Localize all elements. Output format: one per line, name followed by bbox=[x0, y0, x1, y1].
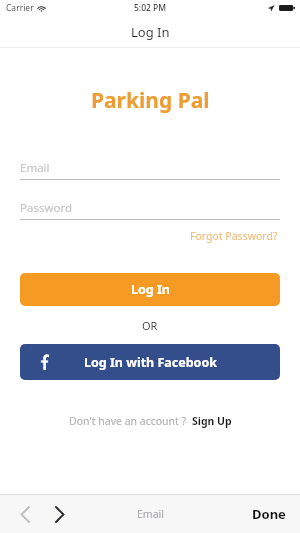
staticText: Email bbox=[20, 160, 50, 176]
button[interactable]: Previous field bbox=[10, 499, 40, 529]
button[interactable]: Log In bbox=[20, 273, 280, 306]
staticText: OR bbox=[142, 318, 158, 333]
staticText: Carrier bbox=[6, 2, 34, 14]
staticText: Don't have an account ? bbox=[69, 414, 187, 428]
button[interactable]: Log In with Facebook bbox=[20, 344, 280, 380]
staticText: Log In with Facebook bbox=[84, 354, 217, 371]
button[interactable]: Sign Up bbox=[192, 414, 232, 428]
staticText: Email bbox=[137, 507, 164, 521]
staticText: Sign Up bbox=[192, 414, 232, 428]
staticText: Parking Pal bbox=[91, 86, 210, 115]
button[interactable]: Next field bbox=[44, 499, 74, 529]
staticText: Forgot Password? bbox=[190, 229, 278, 243]
button[interactable]: Forgot Password? bbox=[188, 227, 280, 245]
staticText: Log In bbox=[131, 23, 170, 41]
button[interactable]: Password bbox=[20, 197, 280, 220]
staticText: Password bbox=[20, 200, 73, 216]
staticText: 5:02 PM bbox=[134, 2, 167, 14]
staticText: Done bbox=[252, 505, 286, 523]
staticText: Log In bbox=[131, 281, 170, 298]
button[interactable]: Email bbox=[20, 157, 280, 180]
button[interactable]: Done bbox=[238, 497, 300, 531]
